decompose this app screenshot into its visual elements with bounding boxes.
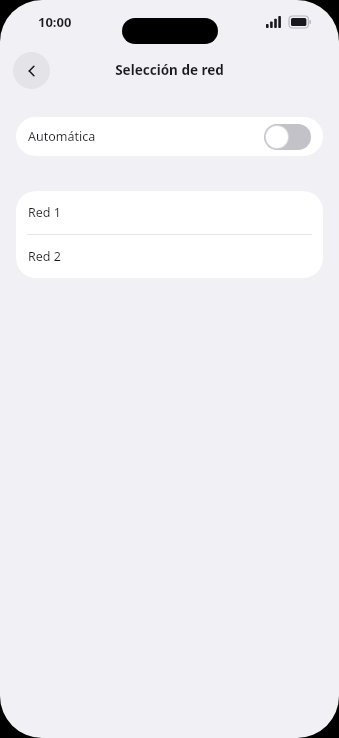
staticText: Selección de red xyxy=(0,61,339,79)
button[interactable]: Back xyxy=(13,52,50,89)
button[interactable]: Automática toggle xyxy=(264,124,311,150)
staticText: 10:00 xyxy=(38,13,72,31)
button[interactable]: Red 1 xyxy=(16,191,323,234)
staticText: Automática xyxy=(28,128,96,145)
button[interactable]: Automática xyxy=(16,117,323,156)
button[interactable]: Red 2 xyxy=(16,235,323,278)
staticText: Red 1 xyxy=(28,204,61,221)
staticText: Red 2 xyxy=(28,248,61,265)
